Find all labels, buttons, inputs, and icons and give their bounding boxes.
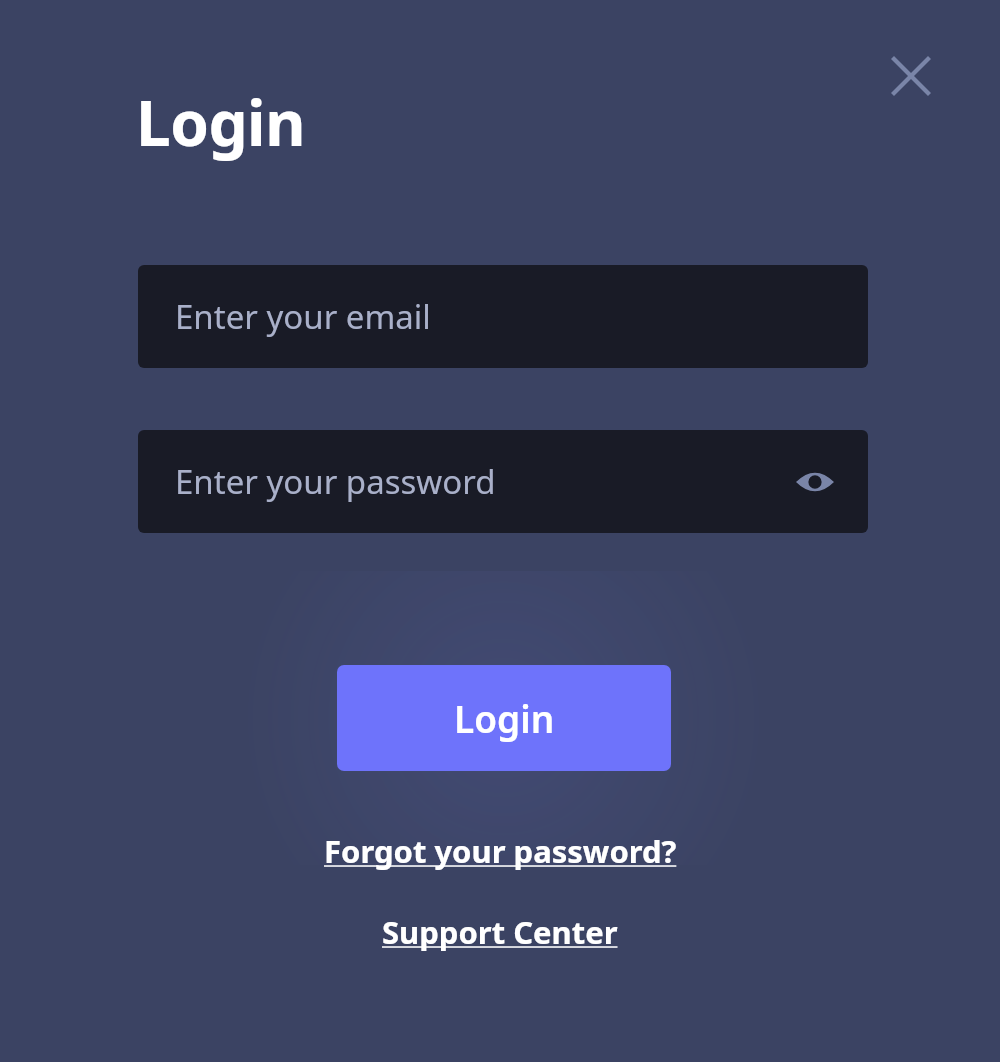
staticText: Login: [454, 693, 555, 743]
staticText: Enter your email: [175, 294, 431, 339]
staticText: Support Center: [382, 911, 618, 953]
button[interactable]: Enter your email: [138, 265, 868, 368]
staticText: Login: [136, 80, 305, 164]
staticText: Forgot your password?: [324, 830, 677, 872]
button[interactable]: Show password: [789, 456, 841, 508]
button[interactable]: Enter your password: [138, 430, 868, 533]
staticText: Enter your password: [175, 459, 496, 504]
button[interactable]: Forgot your password?: [314, 826, 687, 876]
button[interactable]: Support Center: [372, 907, 628, 957]
button[interactable]: Close: [879, 44, 943, 108]
button[interactable]: Login: [337, 665, 671, 771]
